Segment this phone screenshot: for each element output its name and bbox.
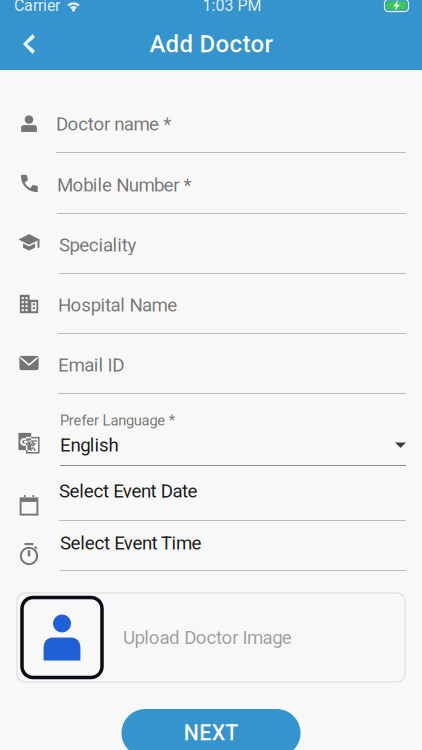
- button[interactable]: NEXT: [121, 709, 300, 750]
- staticText: Select Event Time: [60, 532, 202, 554]
- button[interactable]: Select Event Time: [0, 521, 422, 571]
- staticText: NEXT: [184, 720, 238, 745]
- staticText: Select Event Date: [59, 480, 198, 502]
- staticText: 1:03 PM: [202, 0, 261, 15]
- button[interactable]: Hospital Name: [0, 274, 422, 334]
- staticText: Speciality: [59, 234, 136, 256]
- staticText: Prefer Language *: [60, 412, 175, 429]
- staticText: English: [60, 434, 119, 456]
- staticText: Upload Doctor Image: [123, 627, 292, 648]
- button[interactable]: Doctor name *: [0, 92, 422, 153]
- staticText: Doctor name *: [56, 113, 171, 135]
- staticText: Carrier: [14, 0, 60, 15]
- staticText: Mobile Number *: [57, 174, 191, 196]
- button[interactable]: Speciality: [0, 214, 422, 274]
- staticText: Hospital Name: [58, 294, 177, 316]
- staticText: Email ID: [58, 354, 124, 376]
- button[interactable]: Select Event Date: [0, 466, 422, 521]
- button[interactable]: Prefer Language *: [0, 394, 422, 466]
- button[interactable]: Upload Doctor Image: [0, 593, 422, 682]
- button[interactable]: Email ID: [0, 334, 422, 394]
- button[interactable]: Mobile Number *: [0, 153, 422, 214]
- staticText: Add Doctor: [149, 30, 272, 58]
- button[interactable]: Back: [0, 22, 58, 66]
